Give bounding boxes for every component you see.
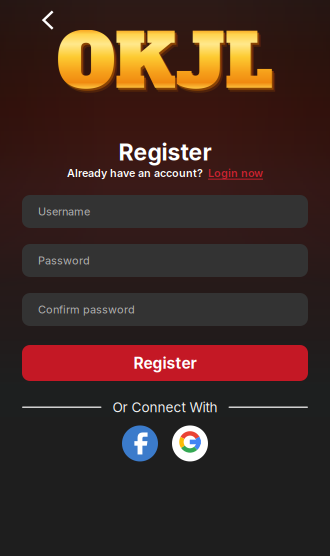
- staticText: Register: [118, 138, 211, 166]
- button[interactable]: Sign in with Facebook: [122, 425, 158, 461]
- button[interactable]: Register: [22, 345, 308, 381]
- staticText: Username: [38, 205, 90, 218]
- button[interactable]: Login now: [208, 166, 263, 180]
- staticText: Password: [38, 254, 90, 267]
- button[interactable]: Back: [33, 5, 63, 35]
- button[interactable]: Sign in with Google: [172, 425, 208, 461]
- staticText: Already have an account?: [67, 166, 203, 180]
- staticText: OKJL: [58, 14, 274, 114]
- staticText: OKJL: [60, 16, 276, 116]
- staticText: Confirm password: [38, 303, 135, 316]
- staticText: Login now: [208, 166, 263, 180]
- staticText: Register: [133, 354, 196, 372]
- staticText: Or Connect With: [112, 399, 217, 415]
